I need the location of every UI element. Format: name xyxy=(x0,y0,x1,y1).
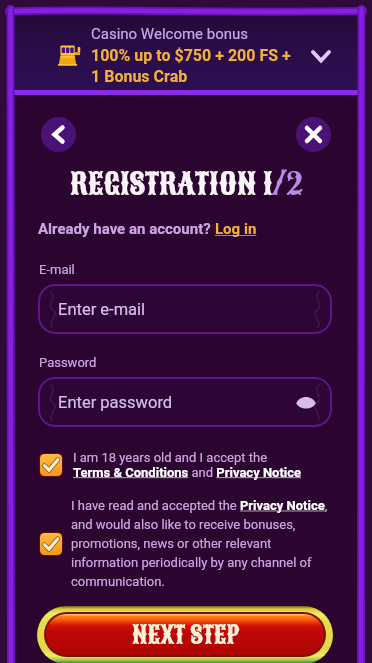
staticText: Enter password xyxy=(58,393,173,412)
staticText: Password xyxy=(39,355,97,370)
staticText: I have read and accepted the Privacy Not… xyxy=(71,498,333,589)
button[interactable]: Enter password xyxy=(38,377,332,427)
button[interactable]: Close xyxy=(296,117,331,152)
staticText: I am 18 years old and I accept the xyxy=(73,450,268,465)
staticText: 100% up to $750 + 200 FS + xyxy=(91,46,291,65)
staticText: REGISTRATION 1/2 xyxy=(70,163,303,205)
button[interactable]: Casino Welcome bonus xyxy=(14,15,358,95)
staticText: Casino Welcome bonus xyxy=(91,25,249,43)
staticText: Terms & Conditions and Privacy Notice xyxy=(73,465,302,480)
button[interactable]: Back xyxy=(41,117,76,152)
button[interactable]: Expand bonus xyxy=(309,44,333,68)
button[interactable]: NEXT STEP xyxy=(46,614,324,655)
staticText: E-mail xyxy=(39,262,75,277)
button[interactable]: Log in xyxy=(215,220,257,238)
staticText: Log in xyxy=(215,220,257,238)
staticText: 1 Bonus Crab xyxy=(91,67,188,86)
button[interactable]: Accept checkbox xyxy=(40,454,62,476)
button[interactable]: Accept checkbox xyxy=(40,533,62,555)
button[interactable]: Show password xyxy=(294,390,318,414)
staticText: NEXT STEP xyxy=(132,618,239,651)
staticText: Already have an account? xyxy=(38,220,215,238)
button[interactable]: Enter e-mail xyxy=(38,284,332,334)
staticText: Enter e-mail xyxy=(58,300,146,319)
